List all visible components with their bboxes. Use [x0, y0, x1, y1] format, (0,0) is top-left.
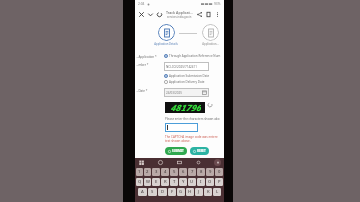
staticText: 9	[209, 169, 212, 175]
button[interactable]: Bookmark	[204, 10, 213, 19]
staticText: 1	[138, 169, 141, 175]
staticText: ...Date *	[136, 89, 148, 93]
button[interactable]	[165, 123, 198, 132]
staticText: Application Delivery Date	[169, 80, 205, 84]
button[interactable]: 3	[152, 168, 160, 176]
button[interactable]: Application Delivery Date	[164, 80, 205, 84]
staticText: W	[146, 179, 150, 185]
staticText: H	[188, 189, 192, 195]
staticText: Application Details	[154, 42, 178, 46]
staticText: Application...	[202, 42, 219, 46]
button[interactable]: Refresh	[155, 10, 164, 19]
staticText: F	[171, 189, 174, 195]
staticText: R	[164, 179, 167, 185]
button[interactable]: 1	[136, 168, 143, 176]
button[interactable]: D	[158, 188, 167, 196]
button[interactable]: Expand	[146, 10, 155, 19]
button[interactable]: Voice input	[214, 159, 221, 166]
staticText: Through Application Reference Num	[169, 54, 221, 58]
button[interactable]: RESET	[190, 147, 209, 155]
staticText: 2:04	[138, 2, 145, 6]
button[interactable]: Settings	[195, 159, 202, 166]
staticText: 481796	[170, 102, 201, 113]
button[interactable]: F	[168, 188, 176, 196]
staticText: D	[161, 189, 165, 195]
staticText: NCLCO/2025/7142411	[166, 65, 197, 69]
staticText: 5	[173, 169, 176, 175]
button[interactable]: 4	[161, 168, 169, 176]
staticText: A	[141, 189, 144, 195]
staticText: 0	[218, 169, 221, 175]
button[interactable]: E	[152, 178, 160, 186]
staticText: 3	[155, 169, 158, 175]
staticText: P	[218, 179, 221, 185]
staticText: T	[173, 179, 176, 185]
button[interactable]: NCLCO/2025/7142411	[164, 62, 209, 71]
button[interactable]: J	[195, 188, 203, 196]
button[interactable]: H	[186, 188, 194, 196]
button[interactable]: More options	[213, 10, 222, 19]
staticText: Y	[182, 179, 185, 185]
staticText: 6	[182, 169, 185, 175]
button[interactable]: Refresh captcha	[207, 102, 213, 108]
button[interactable]: K	[204, 188, 212, 196]
staticText: Please enter the characters shown abo	[165, 117, 220, 121]
staticText: text shown above.	[165, 139, 191, 143]
button[interactable]: SUBMIT	[165, 147, 187, 155]
button[interactable]: O	[206, 178, 214, 186]
staticText: J	[198, 189, 200, 195]
button[interactable]: Y	[179, 178, 187, 186]
button[interactable]: I	[197, 178, 205, 186]
staticText: 8	[200, 169, 203, 175]
button[interactable]: 7	[188, 168, 196, 176]
button[interactable]: A	[138, 188, 147, 196]
button[interactable]: 8	[197, 168, 205, 176]
staticText: ...mber *	[136, 63, 149, 67]
button[interactable]: Sticker	[157, 159, 164, 166]
button[interactable]: 24/03/2025	[164, 88, 209, 97]
staticText: Application Submission Date	[169, 74, 210, 78]
button[interactable]: W	[144, 178, 151, 186]
button[interactable]: Through Application Reference Num	[164, 54, 221, 58]
staticText: services.india.gov.in	[167, 15, 192, 19]
staticText: L	[216, 189, 219, 195]
button[interactable]: Application Submission Date	[164, 74, 210, 78]
button[interactable]: Share	[195, 10, 204, 19]
staticText: 24/03/2025	[166, 91, 182, 95]
staticText: 4	[164, 169, 167, 175]
button[interactable]: U	[188, 178, 196, 186]
staticText: Q	[138, 179, 142, 185]
staticText: 2	[146, 169, 149, 175]
button[interactable]: 0	[215, 168, 223, 176]
staticText: O	[208, 179, 212, 185]
button[interactable]: 9	[206, 168, 214, 176]
staticText: 93%	[214, 2, 221, 6]
staticText: E	[155, 179, 158, 185]
button[interactable]: R	[161, 178, 169, 186]
staticText: K	[207, 189, 210, 195]
button[interactable]: 6	[179, 168, 187, 176]
staticText: S	[151, 189, 154, 195]
button[interactable]: L	[213, 188, 221, 196]
button[interactable]: P	[215, 178, 223, 186]
button[interactable]: 5	[170, 168, 178, 176]
staticText: G	[179, 189, 183, 195]
button[interactable]: G	[177, 188, 185, 196]
button[interactable]: T	[170, 178, 178, 186]
staticText: U	[190, 179, 194, 185]
button[interactable]: Apps	[138, 159, 145, 166]
staticText: SUBMIT	[172, 149, 184, 153]
button[interactable]: S	[148, 188, 157, 196]
staticText: ...Application *	[136, 55, 157, 59]
button[interactable]: Close	[137, 10, 146, 19]
button[interactable]: 2	[144, 168, 151, 176]
button[interactable]: GIF	[176, 159, 183, 166]
staticText: RESET	[197, 149, 206, 153]
staticText: I	[200, 179, 202, 185]
staticText: 7	[191, 169, 194, 175]
button[interactable]: Application Details	[158, 24, 175, 41]
staticText: Track Applicat...	[166, 10, 193, 15]
staticText: The CAPTCHA image code was entere	[165, 135, 218, 139]
button[interactable]: Application...	[202, 24, 219, 41]
button[interactable]: Q	[136, 178, 143, 186]
